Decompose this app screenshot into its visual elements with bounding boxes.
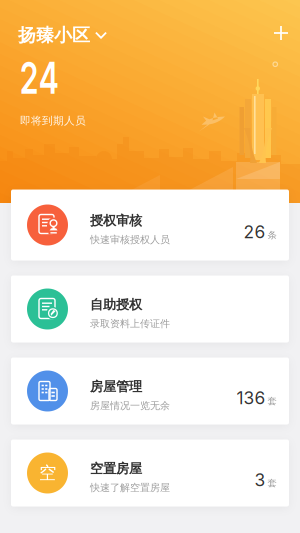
staticText: 套 xyxy=(267,395,276,407)
staticText: 套 xyxy=(267,477,276,489)
staticText: 空置房屋 xyxy=(90,460,142,477)
staticText: 26 xyxy=(243,221,265,242)
staticText: 房屋情况一览无余 xyxy=(90,399,170,412)
staticText: 房屋管理 xyxy=(90,378,142,395)
staticText: 自助授权 xyxy=(90,296,142,313)
button[interactable]: 切换小区 xyxy=(0,0,107,47)
staticText: 空 xyxy=(39,462,56,484)
staticText: 3 xyxy=(254,469,265,490)
staticText: 扬臻小区 xyxy=(18,24,90,47)
button[interactable]: 自助授权 xyxy=(11,275,289,342)
staticText: 录取资料上传证件 xyxy=(90,317,170,330)
staticText: 24 xyxy=(19,51,75,104)
button[interactable]: 空 xyxy=(11,439,289,506)
staticText: 即将到期人员 xyxy=(20,114,86,127)
staticText: 条 xyxy=(267,229,276,241)
staticText: 136 xyxy=(236,387,265,408)
button[interactable]: 添加 xyxy=(264,16,298,50)
button[interactable]: 授权审核 xyxy=(11,189,289,260)
staticText: 快速了解空置房屋 xyxy=(90,481,170,494)
button[interactable]: 房屋管理 xyxy=(11,357,289,424)
staticText: 快速审核授权人员 xyxy=(90,233,170,246)
staticText: 授权审核 xyxy=(90,212,142,229)
